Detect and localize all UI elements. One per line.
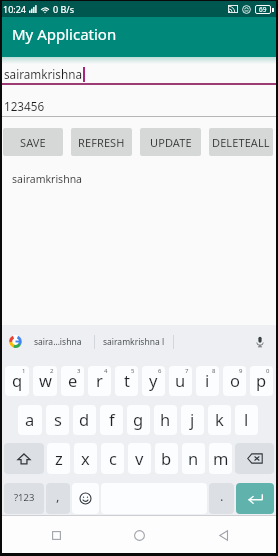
button[interactable]: Backspace (235, 443, 274, 474)
staticText: saira…ishna (34, 336, 82, 348)
button[interactable]: . (209, 483, 234, 514)
staticText: g (133, 408, 144, 430)
staticText: t (124, 369, 130, 391)
button[interactable]: Recents (26, 517, 86, 553)
button[interactable]: o (223, 366, 246, 396)
staticText: 8 (212, 367, 216, 375)
staticText: 1 (22, 367, 26, 375)
staticText: j (190, 408, 195, 430)
staticText: UPDATE (150, 135, 192, 150)
staticText: u (175, 369, 186, 391)
button[interactable]: Voice input (245, 325, 275, 358)
button[interactable]: Back (193, 517, 253, 553)
button[interactable]: d (73, 405, 96, 435)
staticText: n (188, 447, 199, 469)
staticText: m (213, 447, 229, 469)
other: Silent mode (242, 5, 251, 14)
staticText: 10:24 (3, 3, 27, 15)
staticText: s (54, 408, 62, 430)
staticText: sairamkrishna l (103, 336, 165, 348)
button[interactable]: n (182, 443, 205, 474)
staticText: w (39, 369, 52, 391)
button[interactable]: ?123 (4, 483, 44, 514)
button[interactable]: REFRESH (71, 128, 132, 156)
staticText: v (135, 447, 144, 469)
staticText: z (55, 447, 63, 469)
staticText: SAVE (20, 135, 46, 150)
staticText: o (230, 369, 240, 391)
button[interactable]: u (169, 366, 192, 396)
staticText: 4 (104, 367, 108, 375)
staticText: 0 (266, 367, 270, 375)
staticText: b (161, 447, 172, 469)
button[interactable]: h (154, 405, 177, 435)
staticText: 7 (185, 367, 189, 375)
other: Cast (228, 5, 238, 13)
staticText: h (160, 408, 171, 430)
staticText: 123456 (4, 98, 45, 114)
button[interactable]: , (46, 483, 70, 514)
staticText: r (96, 369, 103, 391)
staticText: a (25, 408, 35, 430)
staticText: i (205, 369, 210, 391)
button[interactable]: q (5, 366, 29, 396)
staticText: l (244, 408, 249, 430)
button[interactable]: UPDATE (140, 128, 201, 156)
button[interactable]: sairamkrishna l (95, 325, 173, 358)
button[interactable]: l (235, 405, 258, 435)
staticText: sairamkrishna (12, 172, 83, 186)
staticText: d (79, 408, 90, 430)
staticText: k (215, 408, 224, 430)
staticText: p (256, 369, 267, 391)
button[interactable]: w (33, 366, 57, 396)
button[interactable]: v (128, 443, 151, 474)
staticText: My Application (12, 24, 117, 44)
staticText: 69 (259, 5, 267, 14)
button[interactable]: f (100, 405, 123, 435)
staticText: sairamkrishna (4, 66, 82, 82)
button[interactable]: x (74, 443, 97, 474)
staticText: c (109, 447, 117, 469)
staticText: 3 (77, 367, 81, 375)
button[interactable]: j (181, 405, 204, 435)
staticText: 5 (131, 367, 135, 375)
button[interactable]: z (47, 443, 70, 474)
button[interactable]: e (61, 366, 84, 396)
staticText: x (81, 447, 90, 469)
button[interactable]: m (209, 443, 232, 474)
button[interactable]: t (115, 366, 138, 396)
staticText: 9 (239, 367, 243, 375)
button[interactable]: y (142, 366, 165, 396)
button[interactable]: s (46, 405, 69, 435)
button[interactable]: b (155, 443, 178, 474)
button[interactable]: Shift (4, 443, 44, 474)
button[interactable]: c (101, 443, 124, 474)
staticText: q (12, 369, 23, 391)
button[interactable]: r (88, 366, 111, 396)
button[interactable]: i (196, 366, 219, 396)
button[interactable]: a (18, 405, 42, 435)
staticText: . (220, 487, 224, 505)
button[interactable]: Home (109, 517, 169, 553)
staticText: 2 (50, 367, 54, 375)
button[interactable]: SAVE (3, 128, 63, 156)
button[interactable]: p (250, 366, 273, 396)
staticText: 6 (158, 367, 162, 375)
button[interactable]: DELETEALL (209, 128, 273, 156)
staticText: , (56, 487, 60, 505)
staticText: DELETEALL (212, 135, 270, 150)
button[interactable]: Enter (236, 483, 274, 514)
staticText: ?123 (14, 491, 35, 504)
staticText: f (109, 408, 115, 430)
staticText: REFRESH (78, 135, 125, 150)
button[interactable]: k (208, 405, 231, 435)
button[interactable]: saira…ishna (22, 325, 94, 358)
button[interactable]: g (127, 405, 150, 435)
staticText: e (68, 369, 78, 391)
staticText: y (149, 369, 158, 391)
staticText: 0 B/s (53, 3, 74, 15)
button[interactable]: Emoji (72, 483, 99, 514)
